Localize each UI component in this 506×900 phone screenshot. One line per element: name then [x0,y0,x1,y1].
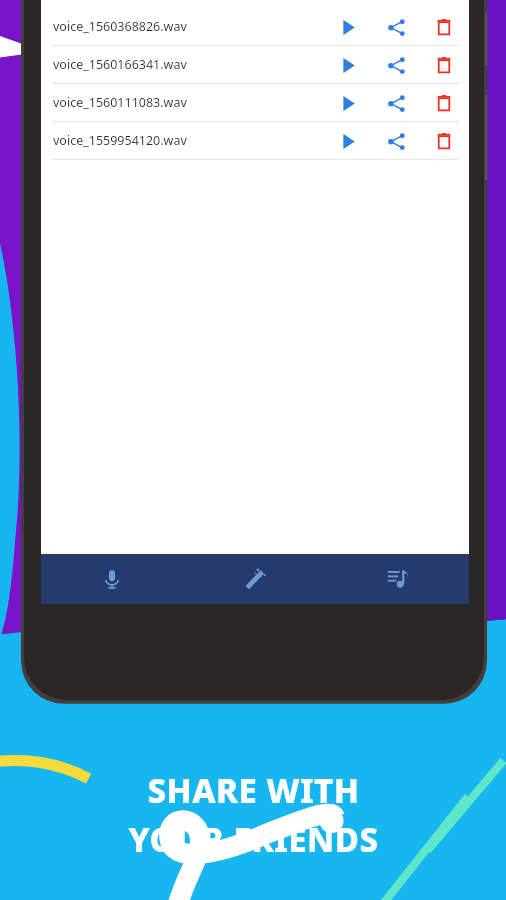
button[interactable]: Playlist [326,554,469,604]
button[interactable]: Play [333,12,363,42]
button[interactable]: Share [381,126,411,156]
button[interactable]: Record [41,554,183,604]
button[interactable]: Delete [429,50,459,80]
button[interactable]: Play [333,88,363,118]
button[interactable]: voice_1560111083.wav [41,84,469,121]
button[interactable]: Delete [429,12,459,42]
staticText: YOUR FRIENDS [128,817,379,862]
button[interactable]: Share [381,50,411,80]
button[interactable]: Play [333,50,363,80]
button[interactable]: Delete [429,88,459,118]
staticText: voice_1560111083.wav [53,94,187,111]
button[interactable]: voice_1560368826.wav [41,8,469,45]
staticText: voice_1560166341.wav [53,56,187,73]
staticText: SHARE WITH [147,768,360,813]
staticText: voice_1560368826.wav [53,18,187,35]
button[interactable]: voice_1559954120.wav [41,122,469,159]
button[interactable]: Share [381,12,411,42]
button[interactable]: Effects [183,554,326,604]
button[interactable]: voice_1560166341.wav [41,46,469,83]
button[interactable]: Play [333,126,363,156]
staticText: voice_1559954120.wav [53,132,187,149]
button[interactable]: Share [381,88,411,118]
button[interactable]: Delete [429,126,459,156]
